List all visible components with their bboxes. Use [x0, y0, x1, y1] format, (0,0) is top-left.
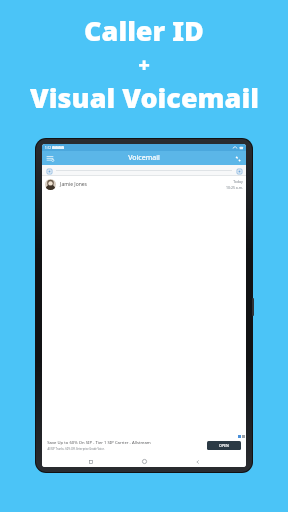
staticText: Voicemail [128, 153, 160, 163]
staticText: Jamie Jones [60, 181, 87, 188]
staticText: 1:12 [45, 146, 51, 150]
button[interactable]: Back [193, 457, 202, 466]
button[interactable]: Menu [45, 153, 56, 164]
button[interactable]: Save Up to 60% On SIP - Tier 1 SIP Carri… [42, 434, 246, 456]
staticText: OPEN [219, 443, 229, 448]
staticText: Caller ID [84, 12, 204, 49]
button[interactable]: Select [45, 167, 53, 175]
button[interactable]: Recents [86, 457, 95, 466]
staticText: Visual Voicemail [30, 79, 259, 116]
staticText: 10:25 a.m. [226, 185, 243, 190]
staticText: Today [233, 179, 243, 184]
staticText: All SIP Trunks. 60% Off. Enterprise Grad… [47, 447, 105, 451]
button[interactable]: Jamie Jones [42, 176, 246, 193]
staticText: + [138, 51, 150, 78]
button[interactable]: Home [140, 457, 149, 466]
button[interactable]: Call [232, 153, 243, 164]
button[interactable]: More options [235, 167, 243, 175]
staticText: Save Up to 60% On SIP - Tier 1 SIP Carri… [47, 440, 151, 446]
button[interactable]: OPEN [207, 441, 241, 450]
